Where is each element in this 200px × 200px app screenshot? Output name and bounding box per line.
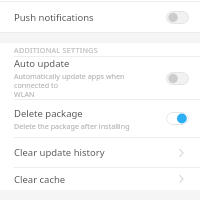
button[interactable]: Toggle off: [166, 11, 189, 24]
button[interactable]: Clear update history: [0, 138, 200, 167]
staticText: Automatically update apps when connected…: [14, 71, 160, 99]
button[interactable]: Push notifications: [0, 2, 200, 32]
staticText: Delete the package after installing: [14, 121, 130, 131]
button[interactable]: Clear cache: [0, 168, 200, 190]
staticText: Push notifications: [14, 11, 94, 24]
staticText: Clear update history: [14, 146, 105, 159]
staticText: Delete package: [14, 107, 83, 120]
button[interactable]: Delete package: [0, 100, 200, 137]
staticText: ADDITIONAL SETTINGS: [14, 45, 99, 55]
button[interactable]: Open: [175, 172, 189, 186]
button[interactable]: Open: [175, 146, 189, 160]
staticText: Clear cache: [14, 173, 66, 186]
staticText: Auto update: [14, 57, 70, 70]
button[interactable]: Auto update: [0, 57, 200, 99]
button[interactable]: Toggle off: [166, 72, 189, 85]
button[interactable]: Toggle on: [166, 112, 189, 125]
